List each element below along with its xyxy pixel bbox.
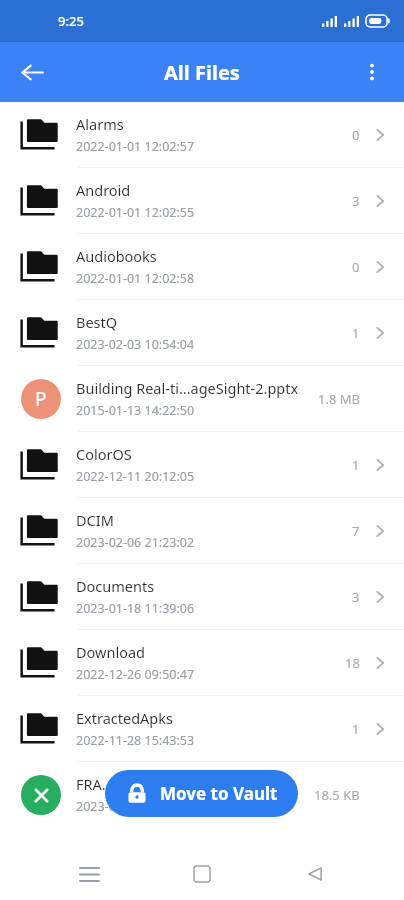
button[interactable]: Documents xyxy=(0,564,404,629)
staticText: BestQ xyxy=(76,312,118,332)
button[interactable]: ExtractedApks xyxy=(0,696,404,761)
staticText: 2022-12-26 09:50:47 xyxy=(76,666,195,683)
staticText: FRA... xyxy=(76,774,114,794)
staticText: 2022-01-01 12:02:57 xyxy=(76,138,195,155)
staticText: ColorOS xyxy=(76,444,132,464)
staticText: 1 xyxy=(352,324,360,342)
staticText: 9:25 xyxy=(58,12,84,30)
staticText: Alarms xyxy=(76,114,124,134)
staticText: 0 xyxy=(352,126,360,144)
staticText: 2022-01-01 12:02:55 xyxy=(76,204,195,221)
staticText: 18.5 KB xyxy=(314,786,360,804)
staticText: 2022-01-01 12:02:58 xyxy=(76,270,195,287)
staticText: 3 xyxy=(352,192,360,210)
button[interactable]: Download xyxy=(0,630,404,695)
staticText: 1 xyxy=(352,456,360,474)
staticText: 0 xyxy=(352,258,360,276)
staticText: Documents xyxy=(76,576,155,596)
staticText: P xyxy=(35,386,47,412)
button[interactable]: Back xyxy=(10,50,54,94)
button[interactable]: Back xyxy=(291,850,339,898)
staticText: 1 xyxy=(352,720,360,738)
staticText: 18 xyxy=(345,654,360,672)
staticText: 2022-12-11 20:12:05 xyxy=(76,468,195,485)
staticText: 2023-02-03 10:54:04 xyxy=(76,336,195,353)
staticText: Building Real-ti...ageSight-2.pptx xyxy=(76,378,299,398)
staticText: 2015-01-13 14:22:50 xyxy=(76,402,195,419)
staticText: 2023-02-06 21:23:02 xyxy=(76,534,195,551)
button[interactable]: Android xyxy=(0,168,404,233)
button[interactable]: More options xyxy=(350,50,394,94)
button[interactable]: DCIM xyxy=(0,498,404,563)
button[interactable]: Alarms xyxy=(0,102,404,167)
staticText: Audiobooks xyxy=(76,246,157,266)
button[interactable]: P xyxy=(0,366,404,431)
staticText: Android xyxy=(76,180,131,200)
staticText: 3 xyxy=(352,588,360,606)
button[interactable]: Audiobooks xyxy=(0,234,404,299)
button[interactable]: FRA... xyxy=(0,762,404,827)
staticText: 2023-01-18 11:39:06 xyxy=(76,600,195,617)
staticText: 2023-02-03 12:22:30 xyxy=(76,798,195,815)
staticText: Move to Vault xyxy=(160,782,278,805)
staticText: DCIM xyxy=(76,510,114,530)
staticText: All Files xyxy=(164,59,240,86)
button[interactable]: BestQ xyxy=(0,300,404,365)
staticText: 2022-11-28 15:43:53 xyxy=(76,732,195,749)
staticText: 1.8 MB xyxy=(318,390,360,408)
button[interactable]: Home xyxy=(178,850,226,898)
staticText: Download xyxy=(76,642,145,662)
staticText: 7 xyxy=(352,522,360,540)
button[interactable]: Recents xyxy=(65,850,113,898)
staticText: ExtractedApks xyxy=(76,708,173,728)
button[interactable]: Move to Vault xyxy=(105,770,298,817)
button[interactable]: ColorOS xyxy=(0,432,404,497)
